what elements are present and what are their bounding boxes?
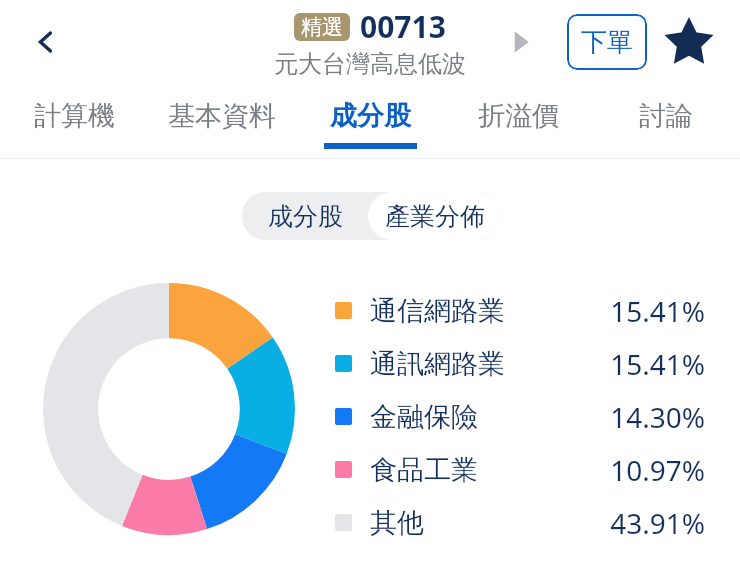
staticText: 精選	[301, 14, 343, 40]
button[interactable]: Favorite	[661, 14, 717, 70]
staticText: 計算機	[34, 99, 115, 133]
button[interactable]: 其他	[335, 496, 705, 549]
staticText: 成分股	[268, 201, 343, 232]
button[interactable]: Back	[18, 14, 74, 70]
staticText: 通信網路業	[370, 294, 505, 328]
staticText: 10.97%	[610, 451, 705, 489]
staticText: 元大台灣高息低波	[274, 49, 466, 79]
button[interactable]: 討論	[592, 93, 740, 158]
button[interactable]: 通訊網路業	[335, 337, 705, 390]
staticText: 金融保險	[370, 400, 478, 434]
button[interactable]: 成分股	[296, 93, 444, 158]
staticText: 其他	[370, 506, 424, 540]
staticText: 基本資料	[168, 99, 276, 133]
button[interactable]: 成分股	[242, 192, 368, 240]
staticText: 產業分佈	[385, 201, 485, 232]
staticText: 00713	[360, 6, 446, 47]
button[interactable]: 精選	[255, 6, 485, 79]
staticText: 15.41%	[610, 345, 705, 383]
button[interactable]: 基本資料	[148, 93, 296, 158]
button[interactable]: 食品工業	[335, 443, 705, 496]
button[interactable]: 產業分佈	[368, 192, 502, 240]
staticText: 43.91%	[610, 504, 705, 542]
button[interactable]: Next	[495, 16, 547, 68]
button[interactable]: 折溢價	[444, 93, 592, 158]
staticText: 食品工業	[370, 453, 478, 487]
staticText: 下單	[581, 26, 633, 59]
staticText: 14.30%	[610, 398, 705, 436]
staticText: 折溢價	[478, 99, 559, 133]
button[interactable]: 通信網路業	[335, 284, 705, 337]
staticText: 15.41%	[610, 292, 705, 330]
button[interactable]: 計算機	[0, 93, 148, 158]
staticText: 討論	[639, 99, 693, 133]
button[interactable]: 金融保險	[335, 390, 705, 443]
staticText: 成分股	[330, 99, 411, 133]
button[interactable]: 下單	[567, 14, 647, 70]
staticText: 通訊網路業	[370, 347, 505, 381]
